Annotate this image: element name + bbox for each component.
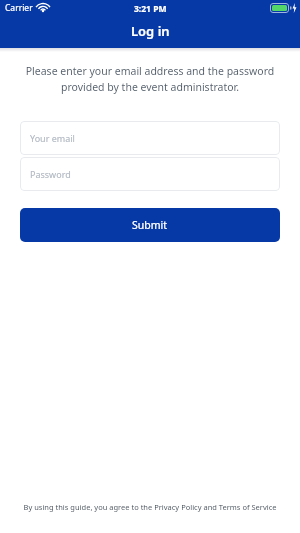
staticText: Please enter your email address and the … [0, 64, 300, 78]
staticText: provided by the event administrator. [0, 80, 300, 94]
staticText: Log in [131, 22, 170, 40]
staticText: Password [30, 168, 71, 180]
staticText: Your email [30, 132, 75, 144]
staticText: Carrier [5, 2, 33, 14]
button[interactable]: Password [20, 157, 280, 191]
button[interactable]: Your email [20, 121, 280, 155]
staticText: Submit [132, 218, 168, 232]
button[interactable]: Submit [20, 208, 280, 242]
staticText: 3:21 PM [134, 3, 167, 15]
button[interactable]: By using this guide, you agree to the Pr… [0, 502, 300, 512]
